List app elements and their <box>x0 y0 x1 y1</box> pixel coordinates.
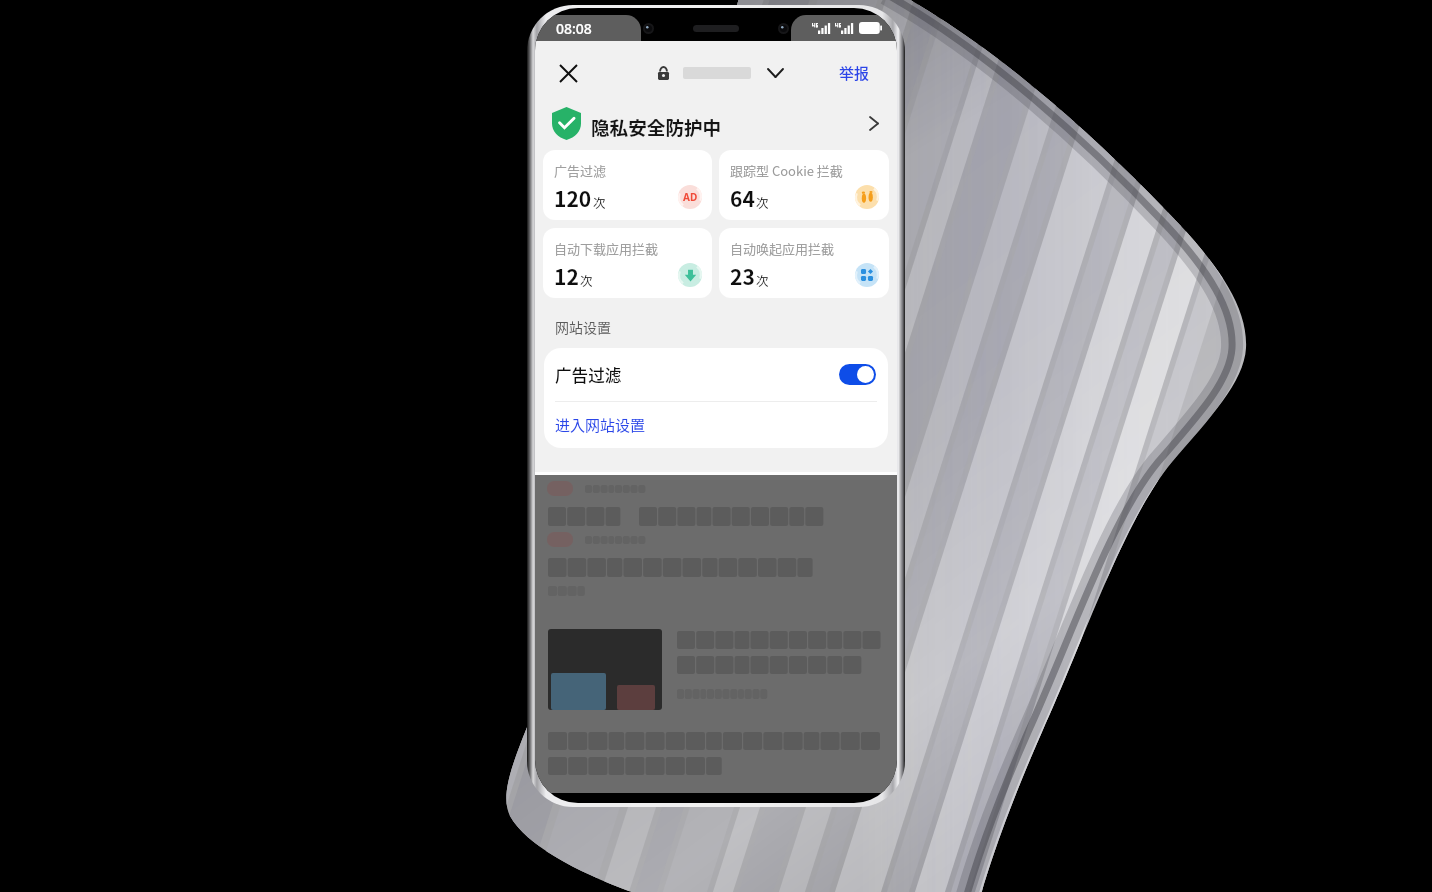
button[interactable]: 自动唤起应用拦截 <box>719 228 889 298</box>
staticText: 08:08 <box>556 19 592 38</box>
button[interactable]: 跟踪型 Cookie 拦截 <box>719 150 889 220</box>
staticText: 次 <box>593 193 606 211</box>
staticText: 进入网站设置 <box>555 414 646 436</box>
staticText: 举报 <box>839 62 870 84</box>
button[interactable]: Expand <box>764 62 786 84</box>
button[interactable]: 广告过滤 <box>543 150 712 220</box>
button[interactable]: Ad filter toggle <box>839 364 876 385</box>
button[interactable]: Close <box>547 52 589 94</box>
staticText: 64 <box>730 183 755 213</box>
staticText: 广告过滤 <box>555 363 622 387</box>
staticText: 23 <box>730 261 755 291</box>
button[interactable]: 隐私安全防护中 <box>535 104 897 149</box>
staticText: 次 <box>756 193 769 211</box>
staticText: 跟踪型 Cookie 拦截 <box>730 161 843 180</box>
staticText: 网站设置 <box>555 317 611 337</box>
button[interactable]: 广告过滤 <box>544 348 888 401</box>
button[interactable]: 自动下载应用拦截 <box>543 228 712 298</box>
staticText: 120 <box>554 183 592 213</box>
staticText: 12 <box>554 261 579 291</box>
staticText: AD <box>683 190 698 204</box>
staticText: 广告过滤 <box>554 161 607 180</box>
staticText: 自动下载应用拦截 <box>554 239 659 258</box>
staticText: 次 <box>756 271 769 289</box>
staticText: 隐私安全防护中 <box>591 113 722 140</box>
staticText: 自动唤起应用拦截 <box>730 239 835 258</box>
staticText: 次 <box>580 271 593 289</box>
button[interactable]: 进入网站设置 <box>544 402 888 448</box>
button[interactable]: 举报 <box>823 54 897 92</box>
